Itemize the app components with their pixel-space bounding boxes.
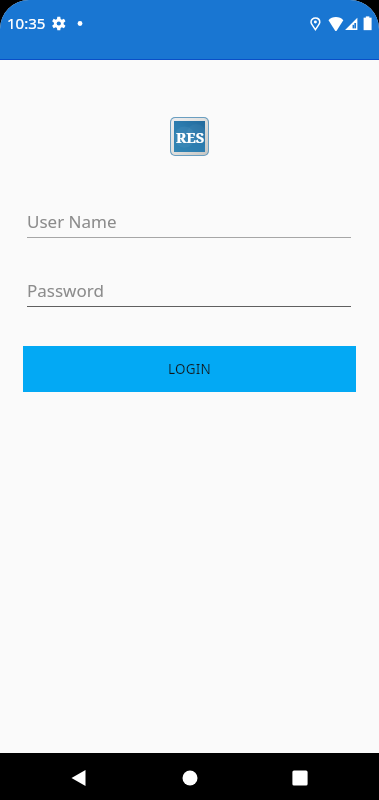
staticText: User Name xyxy=(27,210,117,233)
staticText: RES xyxy=(176,127,205,147)
button[interactable]: Recent apps xyxy=(285,762,315,792)
button[interactable]: LOGIN xyxy=(23,346,356,392)
button[interactable]: User Name xyxy=(27,196,351,238)
button[interactable]: Back xyxy=(64,762,94,792)
staticText: 10:35 xyxy=(7,13,46,33)
button[interactable]: Home xyxy=(175,762,205,792)
staticText: LOGIN xyxy=(168,360,212,378)
staticText: Password xyxy=(27,279,104,302)
button[interactable]: Password xyxy=(27,265,351,307)
